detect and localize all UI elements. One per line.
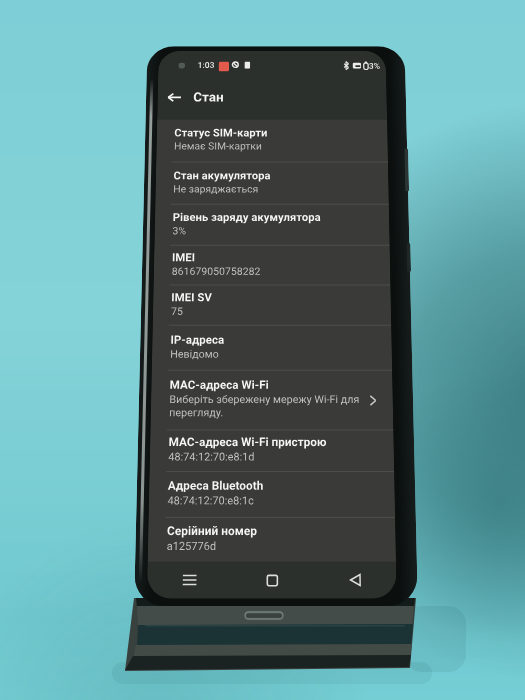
staticText: 75: [171, 305, 183, 317]
button[interactable]: IP-адреса: [152, 326, 392, 370]
staticText: Статус SIM-карти: [174, 126, 268, 138]
button[interactable]: Home: [231, 562, 314, 598]
staticText: Невідомо: [170, 348, 220, 360]
staticText: Рівень заряду акумулятора: [173, 210, 321, 223]
staticText: Не заряджається: [173, 183, 258, 194]
staticText: Серійний номер: [167, 523, 257, 537]
button[interactable]: Статус SIM-карти: [156, 120, 388, 161]
staticText: a125776d: [167, 539, 217, 552]
staticText: IP-адреса: [170, 333, 225, 346]
button[interactable]: Адреса Bluetooth: [149, 472, 395, 517]
staticText: MAC-адреса Wi-Fi: [170, 378, 269, 391]
staticText: IMEI: [172, 251, 196, 263]
staticText: 861679050758282: [172, 265, 261, 277]
button[interactable]: Back: [314, 562, 397, 598]
staticText: Виберіть збережену мережу Wi-Fi для пере…: [169, 393, 360, 419]
button[interactable]: Стан акумулятора: [155, 162, 389, 204]
staticText: 1:03: [197, 61, 215, 71]
button[interactable]: MAC-адреса Wi-Fi: [150, 371, 393, 430]
staticText: IMEI SV: [171, 290, 212, 303]
staticText: 3%: [172, 225, 186, 236]
staticText: Немає SIM-картки: [174, 140, 262, 151]
button[interactable]: Рівень заряду акумулятора: [154, 205, 390, 245]
staticText: MAC-адреса Wi-Fi пристрою: [168, 435, 327, 448]
staticText: Стан: [193, 90, 224, 104]
staticText: Стан акумулятора: [173, 169, 271, 181]
button[interactable]: Back: [161, 85, 188, 110]
staticText: Адреса Bluetooth: [168, 478, 264, 492]
button[interactable]: IMEI: [154, 246, 390, 284]
staticText: 48:74:12:70:e8:1d: [168, 450, 254, 463]
staticText: 3%: [369, 62, 380, 71]
staticText: 48:74:12:70:e8:1c: [167, 494, 254, 506]
button[interactable]: IMEI SV: [153, 285, 391, 325]
button[interactable]: Серійний номер: [148, 518, 396, 561]
button[interactable]: Recent apps: [147, 562, 231, 598]
button[interactable]: MAC-адреса Wi-Fi пристрою: [150, 431, 394, 471]
